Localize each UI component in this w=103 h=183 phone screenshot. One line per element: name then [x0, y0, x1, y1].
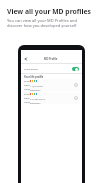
staticText: View all your MD profiles [7, 7, 91, 16]
staticText: Variant: [24, 87, 30, 91]
staticText: Profile: [24, 92, 30, 96]
button[interactable]: More info [74, 83, 78, 87]
staticText: Show profile [24, 67, 38, 70]
staticText: 11 Jul 2023 [30, 84, 43, 87]
button[interactable]: Show profile [24, 64, 79, 73]
staticText: MD Profile [44, 57, 58, 61]
staticText: Your life profile [24, 75, 44, 79]
button[interactable]: Profile: [23, 92, 80, 104]
staticText: Date: [24, 96, 30, 100]
staticText: Business [30, 88, 41, 91]
staticText: Date: [24, 83, 30, 87]
staticText: You can view all your MD Profiles and di… [7, 18, 90, 28]
staticText: Variant: [24, 100, 30, 104]
button[interactable]: Back [24, 57, 28, 61]
staticText: 12 May 2018 [30, 97, 45, 100]
button[interactable]: Profile: [23, 79, 80, 91]
button[interactable]: More info [74, 96, 78, 100]
staticText: Profile: [24, 79, 30, 83]
staticText: Business [30, 101, 41, 104]
